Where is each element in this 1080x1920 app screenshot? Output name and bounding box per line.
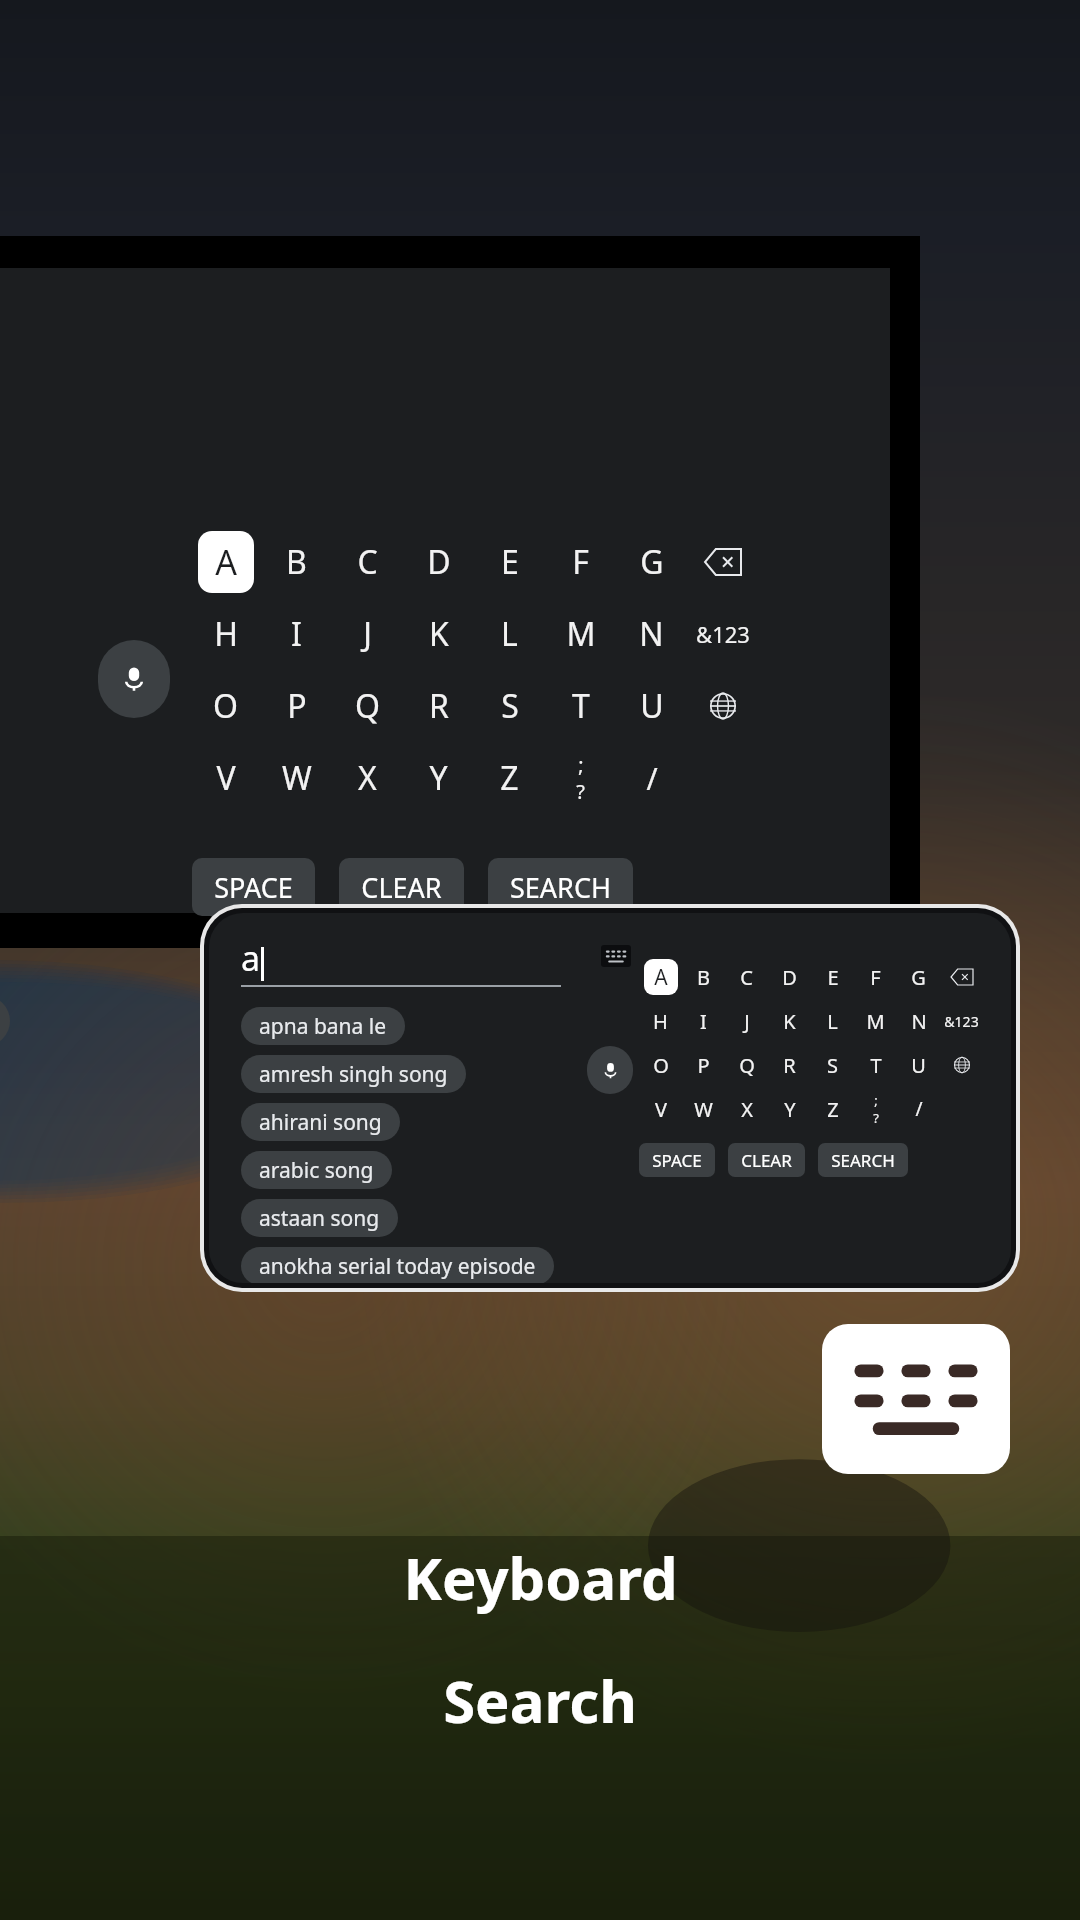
button[interactable]: SEARCH (488, 858, 633, 916)
button[interactable]: Language (940, 1043, 983, 1087)
staticText: arabic song (259, 1156, 374, 1185)
button[interactable]: N (616, 598, 687, 670)
button[interactable]: ; (854, 1087, 897, 1131)
button[interactable]: Z (474, 742, 545, 814)
staticText: G (640, 540, 664, 584)
staticText: R (429, 684, 449, 728)
button[interactable]: / (897, 1087, 940, 1131)
staticText: P (287, 684, 307, 728)
button[interactable]: / (616, 742, 687, 814)
button[interactable]: ; (545, 742, 616, 814)
button[interactable]: B (682, 955, 725, 999)
staticText: U (640, 684, 664, 728)
staticText: D (782, 964, 797, 991)
other: Backspace (705, 549, 741, 575)
staticText: F (572, 540, 589, 584)
button[interactable]: V (639, 1087, 682, 1131)
staticText: S (501, 684, 519, 728)
button[interactable]: arabic song (241, 1151, 392, 1189)
button[interactable]: X (332, 742, 403, 814)
button[interactable]: O (190, 670, 261, 742)
button[interactable]: anokha serial today episode (241, 1247, 554, 1283)
button[interactable]: SEARCH (818, 1143, 908, 1177)
button[interactable]: Voice search (587, 1046, 633, 1094)
button[interactable]: A (639, 955, 682, 999)
button[interactable]: M (854, 999, 897, 1043)
button[interactable]: W (682, 1087, 725, 1131)
button[interactable]: V (190, 742, 261, 814)
button[interactable]: D (768, 955, 811, 999)
button[interactable]: CLEAR (728, 1143, 805, 1177)
button[interactable]: ode (0, 996, 10, 1046)
button[interactable]: E (811, 955, 854, 999)
button[interactable]: E (474, 526, 545, 598)
button[interactable]: Language (687, 670, 758, 742)
staticText: Q (355, 684, 380, 728)
staticText: SEARCH (510, 869, 611, 906)
button[interactable]: I (261, 598, 332, 670)
button[interactable]: H (639, 999, 682, 1043)
button[interactable]: Backspace (940, 955, 983, 999)
button[interactable]: P (682, 1043, 725, 1087)
button[interactable]: F (854, 955, 897, 999)
staticText: I (291, 612, 302, 656)
button[interactable]: R (403, 670, 474, 742)
button[interactable]: J (332, 598, 403, 670)
button[interactable]: T (854, 1043, 897, 1087)
button[interactable]: U (616, 670, 687, 742)
button[interactable]: G (897, 955, 940, 999)
button[interactable]: C (725, 955, 768, 999)
button[interactable]: Backspace (687, 526, 758, 598)
button[interactable]: W (261, 742, 332, 814)
staticText: CLEAR (741, 1149, 792, 1172)
button[interactable]: K (768, 999, 811, 1043)
button[interactable]: A (190, 526, 261, 598)
button[interactable]: J (725, 999, 768, 1043)
button[interactable]: H (190, 598, 261, 670)
button[interactable]: Y (768, 1087, 811, 1131)
button[interactable]: Keyboard Search app icon (822, 1324, 1010, 1474)
button[interactable]: C (332, 526, 403, 598)
button[interactable]: apna bana le (241, 1007, 405, 1045)
button[interactable]: X (725, 1087, 768, 1131)
staticText: V (655, 1096, 667, 1123)
button[interactable]: Y (403, 742, 474, 814)
button[interactable]: Z (811, 1087, 854, 1131)
button[interactable]: U (897, 1043, 940, 1087)
button[interactable]: Voice search (98, 640, 170, 718)
button[interactable]: F (545, 526, 616, 598)
button[interactable]: S (811, 1043, 854, 1087)
button[interactable]: S (474, 670, 545, 742)
button[interactable]: &123 (687, 598, 758, 670)
button[interactable]: ahirani song (241, 1103, 400, 1141)
button[interactable]: B (261, 526, 332, 598)
button[interactable]: P (261, 670, 332, 742)
button[interactable]: Toggle keyboard (601, 945, 631, 967)
button[interactable]: T (545, 670, 616, 742)
staticText: M (866, 1008, 885, 1035)
button[interactable]: D (403, 526, 474, 598)
button[interactable]: I (682, 999, 725, 1043)
button[interactable]: amresh singh song (241, 1055, 466, 1093)
staticText: I (700, 1008, 707, 1035)
staticText: ; (578, 751, 584, 778)
button[interactable]: Q (725, 1043, 768, 1087)
button[interactable]: SPACE (192, 858, 315, 916)
button[interactable]: G (616, 526, 687, 598)
button[interactable]: O (639, 1043, 682, 1087)
button[interactable]: &123 (940, 999, 983, 1043)
button[interactable]: M (545, 598, 616, 670)
button[interactable]: N (897, 999, 940, 1043)
staticText: Y (429, 756, 448, 800)
button[interactable]: SPACE (639, 1143, 715, 1177)
button[interactable]: CLEAR (339, 858, 464, 916)
staticText: C (357, 540, 378, 584)
button[interactable]: R (768, 1043, 811, 1087)
button[interactable]: astaan song (241, 1199, 398, 1237)
button[interactable]: Q (332, 670, 403, 742)
button[interactable]: L (811, 999, 854, 1043)
button[interactable]: L (474, 598, 545, 670)
button[interactable]: K (403, 598, 474, 670)
staticText: A (215, 539, 237, 585)
staticText: Search (443, 1661, 637, 1740)
